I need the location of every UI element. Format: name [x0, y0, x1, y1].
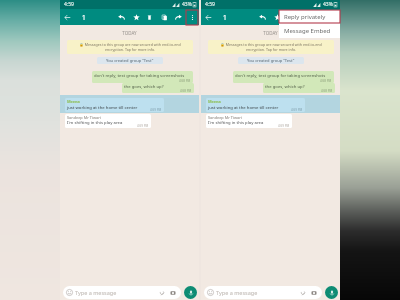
button[interactable]: 🔒 Messages to this group are now secured… [67, 40, 193, 54]
staticText: Type a message [216, 289, 258, 296]
button[interactable]: Back [62, 9, 73, 25]
button[interactable]: More options [186, 9, 198, 25]
staticText: the goes, which up? [265, 84, 305, 90]
staticText: Message Embed [284, 27, 331, 35]
staticText: 4:59 PM [150, 108, 162, 112]
button[interactable]: Forward [172, 9, 184, 25]
staticText: You created group “Test” [247, 58, 295, 63]
staticText: 4:59 PM [278, 124, 290, 128]
button[interactable]: Record voice message [184, 286, 197, 299]
button[interactable]: Meena [60, 95, 199, 113]
staticText: 4:59 PM [137, 124, 149, 128]
button[interactable]: the goes, which up? [263, 83, 335, 93]
button[interactable]: Attach [299, 289, 307, 297]
button[interactable]: Star [271, 9, 283, 25]
button[interactable]: Sandeep Mr Tiwari [65, 114, 151, 128]
staticText: 43% [182, 1, 192, 8]
staticText: I'm shifting in this play area [67, 120, 123, 126]
button[interactable]: Reply [115, 9, 127, 25]
button[interactable]: don't reply, test group for taking scree… [92, 71, 193, 83]
button[interactable]: Delete [143, 9, 155, 25]
staticText: 4:58 PM [179, 79, 191, 83]
staticText: Meena [208, 99, 221, 104]
button[interactable]: Record voice message [325, 286, 338, 299]
staticText: the goes, which up? [124, 84, 164, 90]
button[interactable]: Delete [284, 9, 296, 25]
button[interactable]: Star [130, 9, 142, 25]
staticText: 43% [323, 1, 333, 8]
staticText: Meena [67, 99, 80, 104]
staticText: 4:59 PM [291, 108, 303, 112]
button[interactable]: More options [327, 9, 339, 25]
button[interactable]: Reply [256, 9, 268, 25]
button[interactable]: Message Embed [279, 23, 340, 38]
button[interactable]: 🔒 Messages to this group are now secured… [208, 40, 334, 54]
button[interactable]: Attach [158, 289, 166, 297]
button[interactable]: Reply privately [279, 10, 340, 23]
staticText: 1 [223, 13, 227, 22]
staticText: TODAY [60, 30, 199, 36]
staticText: TODAY [201, 30, 340, 36]
button[interactable]: Back [203, 9, 214, 25]
button[interactable]: Copy [299, 9, 311, 25]
button[interactable]: Type a message [63, 286, 181, 299]
staticText: 4:58 PM [180, 89, 192, 93]
button[interactable]: don't reply, test group for taking scree… [233, 71, 334, 83]
staticText: 4:58 PM [321, 89, 333, 93]
staticText: 1 [82, 13, 86, 22]
staticText: don't reply, test group for taking scree… [235, 73, 326, 79]
staticText: 🔒 Messages to this group are now secured… [211, 42, 331, 52]
staticText: Reply privately [284, 13, 326, 21]
button[interactable]: Copy [158, 9, 170, 25]
staticText: 4:59 [64, 1, 74, 8]
staticText: just working at the home till center [67, 105, 138, 111]
staticText: just working at the home till center [208, 105, 279, 111]
staticText: Type a message [75, 289, 117, 296]
staticText: 4:58 PM [320, 79, 332, 83]
button[interactable]: Camera [169, 289, 177, 297]
staticText: You created group “Test” [106, 58, 154, 63]
staticText: 🔒 Messages to this group are now secured… [70, 42, 190, 52]
button[interactable]: Type a message [204, 286, 322, 299]
button[interactable]: Camera [310, 289, 318, 297]
staticText: I'm shifting in this play area [208, 120, 264, 126]
staticText: Sandeep Mr Tiwari [208, 115, 242, 120]
staticText: don't reply, test group for taking scree… [94, 73, 185, 79]
button[interactable]: Meena [201, 95, 340, 113]
button[interactable]: the goes, which up? [122, 83, 194, 93]
button[interactable]: Forward [313, 9, 325, 25]
button[interactable]: Sandeep Mr Tiwari [206, 114, 292, 128]
staticText: 4:59 [205, 1, 215, 8]
staticText: Sandeep Mr Tiwari [67, 115, 101, 120]
